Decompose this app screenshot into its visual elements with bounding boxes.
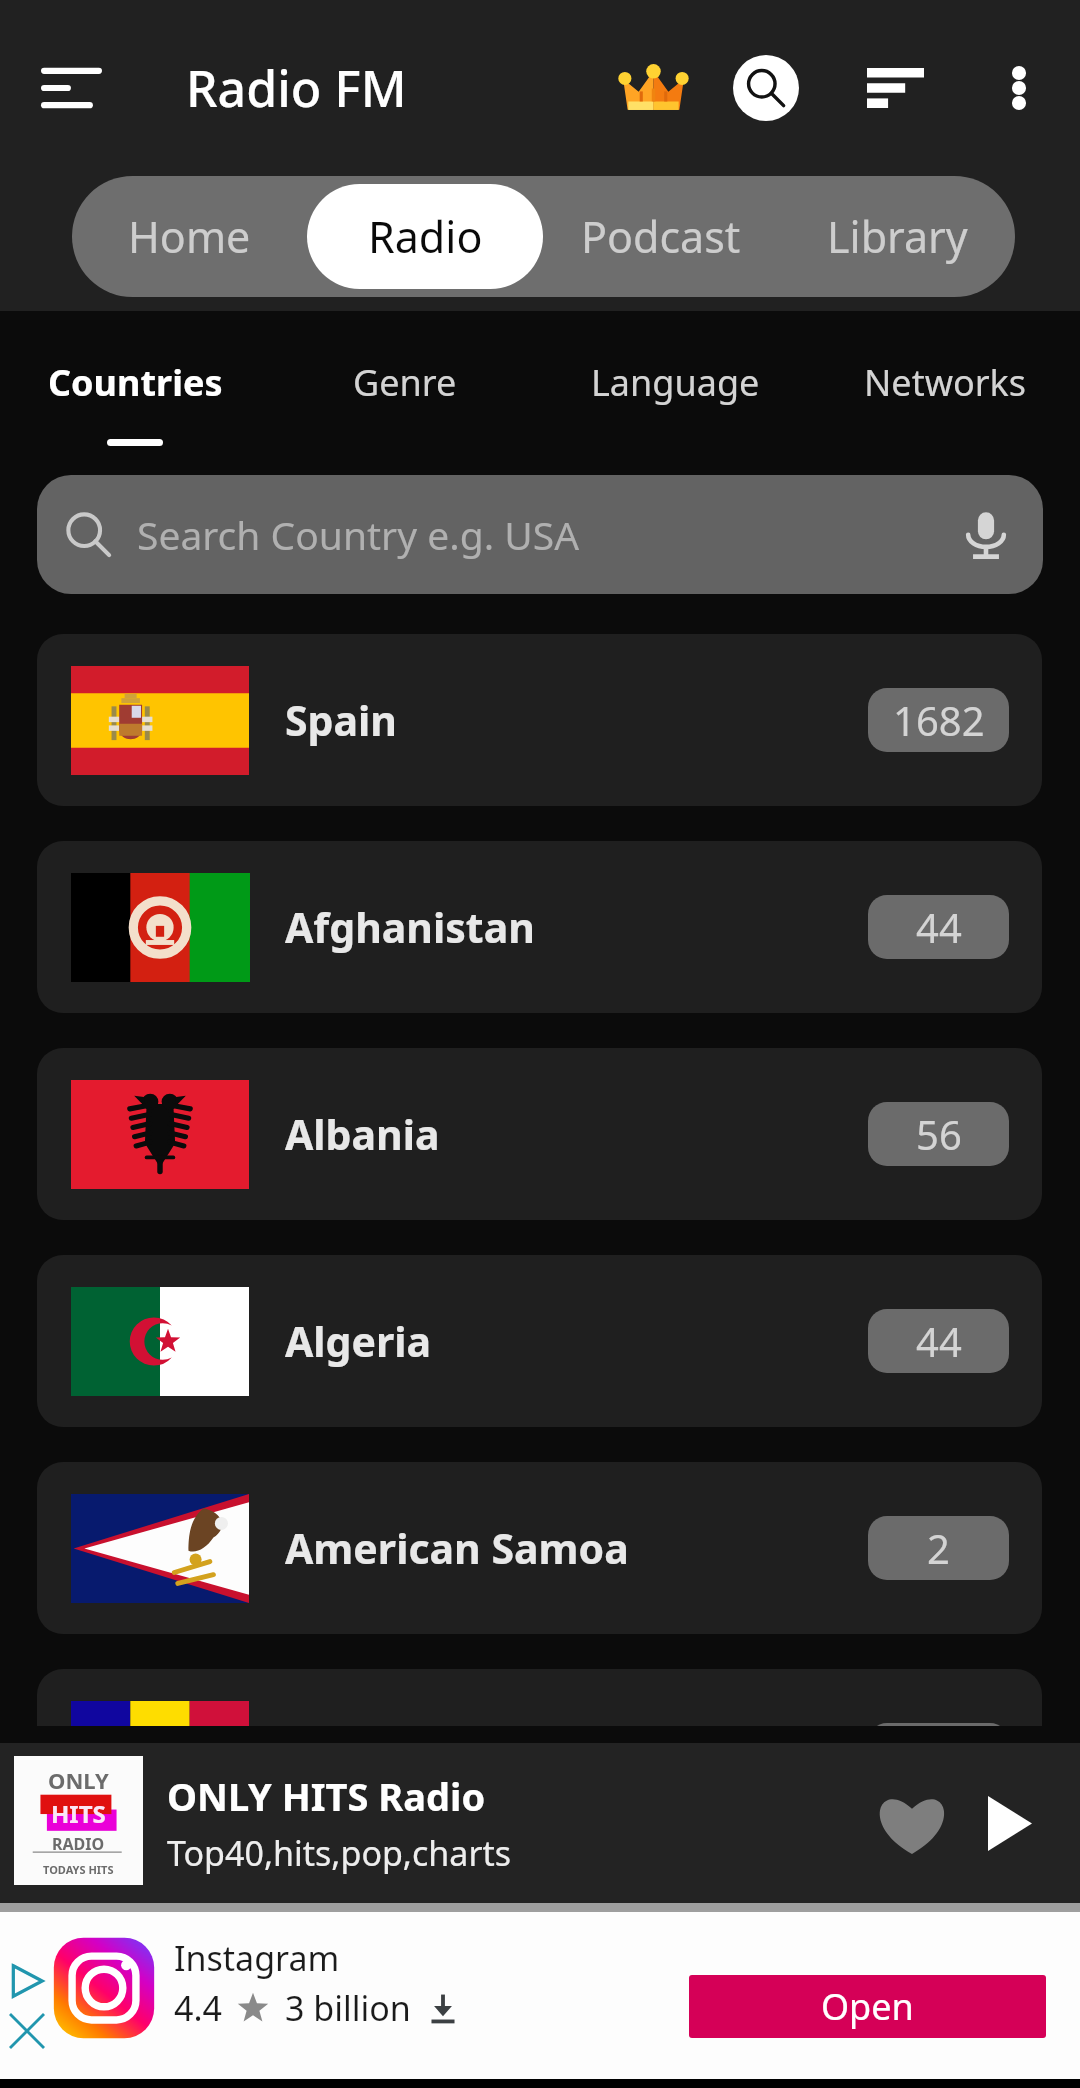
button[interactable]: Open	[689, 1975, 1046, 2038]
staticText: 44	[916, 900, 962, 954]
button[interactable]: Search Country e.g. USA	[37, 475, 1043, 594]
button[interactable]: Favorite	[864, 1775, 960, 1871]
button[interactable]: Networks	[810, 311, 1080, 455]
staticText: Genre	[353, 358, 457, 407]
staticText: 56	[916, 1107, 962, 1161]
button[interactable]: Afghanistan	[37, 841, 1042, 1013]
staticText: 44	[916, 1314, 962, 1368]
staticText: Networks	[864, 358, 1027, 407]
staticText: 9	[927, 1728, 950, 1782]
button[interactable]: Radio	[307, 184, 543, 289]
button[interactable]: Genre	[270, 311, 540, 455]
staticText: Instagram	[174, 1935, 340, 1981]
staticText: 3 billion	[285, 1985, 411, 2031]
staticText: ONLY HITS Radio	[167, 1770, 486, 1822]
button[interactable]: Algeria	[37, 1255, 1042, 1427]
staticText: Spain	[285, 692, 397, 748]
staticText: 1682	[893, 693, 985, 747]
button[interactable]: Search	[733, 55, 799, 121]
staticText: Algeria	[285, 1313, 432, 1369]
staticText: HITS	[51, 1797, 106, 1830]
button[interactable]: More options	[981, 50, 1057, 126]
staticText: 2	[927, 1521, 950, 1575]
button[interactable]: American Samoa	[37, 1462, 1042, 1634]
button[interactable]: Albania	[37, 1048, 1042, 1220]
staticText: Home	[128, 207, 251, 266]
button[interactable]: Library	[779, 184, 1015, 289]
staticText: Albania	[285, 1106, 440, 1162]
button[interactable]: Premium	[604, 39, 702, 137]
button[interactable]: Menu	[7, 24, 135, 152]
staticText: Library	[827, 207, 968, 266]
button[interactable]: Home	[72, 184, 307, 289]
staticText: Podcast	[581, 207, 741, 266]
staticText: Countries	[48, 358, 223, 407]
staticText: ONLY	[48, 1765, 109, 1795]
button[interactable]: Language	[540, 311, 810, 455]
staticText: Top40,hits,pop,charts	[167, 1830, 511, 1876]
button[interactable]: Spain	[37, 634, 1042, 806]
staticText: 4.4	[174, 1985, 223, 2031]
staticText: American Samoa	[285, 1520, 629, 1576]
button[interactable]: Countries	[0, 311, 270, 455]
staticText: Open	[821, 1982, 914, 2031]
button[interactable]: Sort	[857, 50, 933, 126]
staticText: RADIO	[52, 1833, 105, 1855]
staticText: Radio FM	[186, 54, 407, 122]
button[interactable]: Podcast	[543, 184, 779, 289]
staticText: Language	[591, 358, 760, 407]
button[interactable]: Andorra	[37, 1669, 1042, 1841]
staticText: Afghanistan	[285, 899, 535, 955]
staticText: Radio	[368, 207, 483, 266]
staticText: Search Country e.g. USA	[137, 508, 580, 561]
staticText: TODAYS HITS	[43, 1862, 114, 1877]
staticText: Andorra	[285, 1727, 452, 1783]
button[interactable]: Play	[962, 1775, 1058, 1871]
